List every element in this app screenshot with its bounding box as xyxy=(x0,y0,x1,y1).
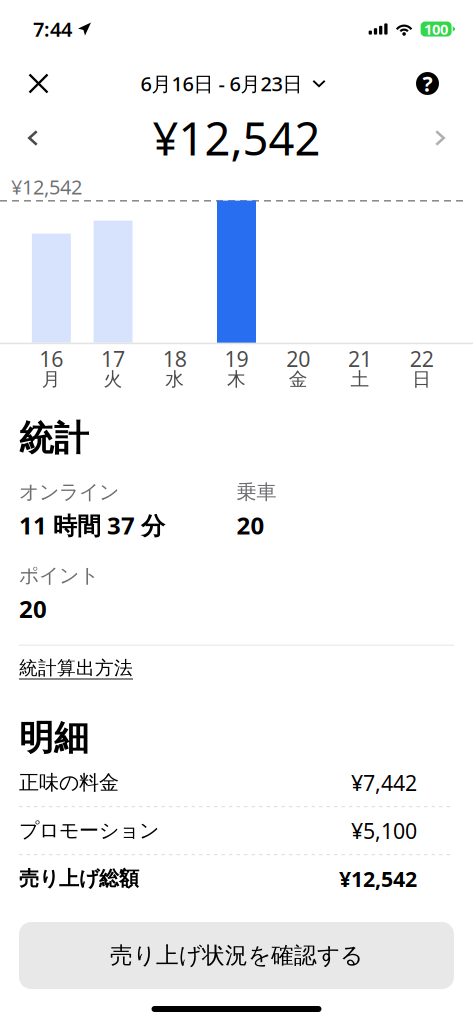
staticText: ? xyxy=(422,69,432,98)
staticText: 22 xyxy=(410,344,434,373)
staticText: 6月16日 - 6月23日 xyxy=(140,70,302,97)
staticText: 20 xyxy=(19,593,47,625)
staticText: 16 xyxy=(39,344,63,373)
staticText: 20 xyxy=(286,344,310,373)
button[interactable]: 売り上げ状況を確認する xyxy=(19,922,454,989)
staticText: ポイント xyxy=(19,563,99,588)
staticText: 明細 xyxy=(19,717,89,759)
staticText: 統計 xyxy=(19,417,89,460)
staticText: 月 xyxy=(42,368,61,391)
button[interactable]: Close xyxy=(16,58,61,109)
staticText: 金 xyxy=(289,368,308,391)
staticText: 11 時間 37 分 xyxy=(19,509,165,541)
staticText: 日 xyxy=(412,368,431,391)
staticText: 100 xyxy=(424,19,448,39)
staticText: ¥12,542 xyxy=(11,173,82,200)
staticText: 売り上げ状況を確認する xyxy=(110,942,363,969)
staticText: ¥5,100 xyxy=(351,816,417,845)
staticText: 水 xyxy=(165,368,184,391)
button[interactable]: 統計算出方法 xyxy=(19,650,133,687)
button[interactable]: 6月16日 - 6月23日 xyxy=(140,58,325,109)
staticText: ¥12,542 xyxy=(152,108,320,168)
staticText: 土 xyxy=(350,368,369,391)
staticText: 18 xyxy=(163,344,187,373)
staticText: 火 xyxy=(104,368,123,391)
staticText: 21 xyxy=(348,344,372,373)
button[interactable]: Next week xyxy=(418,109,462,167)
staticText: 乗車 xyxy=(236,480,276,504)
button[interactable]: Previous week xyxy=(11,109,55,167)
staticText: 17 xyxy=(101,344,125,373)
staticText: 売り上げ総額 xyxy=(19,866,139,891)
staticText: ¥12,542 xyxy=(339,864,417,893)
button[interactable]: Help xyxy=(405,58,450,109)
staticText: 7:44 xyxy=(33,16,72,42)
staticText: 統計算出方法 xyxy=(19,657,133,680)
staticText: ¥7,442 xyxy=(351,768,417,797)
staticText: 20 xyxy=(236,509,264,541)
staticText: オンライン xyxy=(19,480,119,504)
staticText: 19 xyxy=(224,344,248,373)
staticText: 木 xyxy=(227,368,246,391)
staticText: 正味の料金 xyxy=(19,770,119,795)
staticText: プロモーション xyxy=(19,818,159,843)
